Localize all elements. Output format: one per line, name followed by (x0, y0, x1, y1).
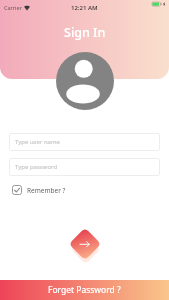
staticText: 12:21 AM (71, 4, 98, 12)
button[interactable]: Forget Password ? (0, 280, 169, 300)
staticText: Type user name (15, 138, 60, 146)
button[interactable]: Remember ? (12, 185, 66, 195)
button[interactable]: Type user name (9, 133, 160, 151)
button[interactable]: Type password (9, 158, 160, 176)
button[interactable]: Sign in (63, 222, 107, 266)
staticText: Sign In (64, 24, 106, 41)
staticText: Remember ? (27, 186, 66, 195)
staticText: Carrier (4, 4, 22, 11)
staticText: Type password (15, 163, 58, 171)
staticText: Forget Password ? (48, 284, 121, 296)
